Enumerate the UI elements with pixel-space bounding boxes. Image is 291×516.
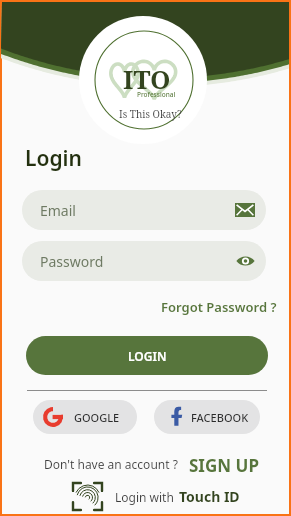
staticText: Login with <box>115 489 174 505</box>
button[interactable]: GOOGLE <box>33 400 137 434</box>
staticText: Login <box>25 144 82 173</box>
other: Email <box>235 203 255 217</box>
button[interactable]: Password <box>22 241 266 281</box>
staticText: GOOGLE <box>74 410 120 425</box>
staticText: Email <box>40 201 76 220</box>
staticText: Don't have an account ? <box>44 456 178 472</box>
button[interactable]: SIGN UP <box>189 454 259 477</box>
staticText: FACEBOOK <box>191 410 249 425</box>
staticText: ITO <box>123 61 171 96</box>
button[interactable]: FACEBOOK <box>154 400 260 434</box>
staticText: Touch ID <box>179 487 240 506</box>
staticText: Password <box>40 252 104 271</box>
button[interactable]: LOGIN <box>26 336 268 375</box>
staticText: LOGIN <box>128 348 167 364</box>
staticText: Is This Okay? <box>119 107 182 121</box>
other: Fingerprint <box>71 481 104 512</box>
staticText: Professional <box>137 90 176 99</box>
button[interactable]: Fingerprint <box>71 481 240 512</box>
button[interactable]: Forgot Password ? <box>161 298 277 316</box>
other: Show password <box>236 255 255 267</box>
button[interactable]: Email <box>22 190 266 230</box>
